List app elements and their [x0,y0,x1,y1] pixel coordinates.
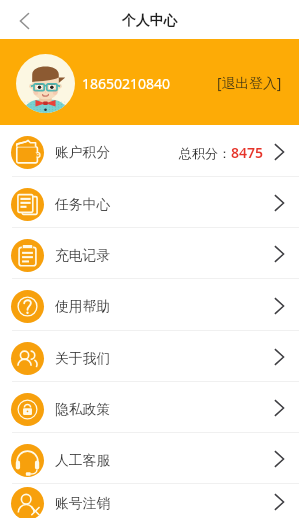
staticText: 隐私政策 [55,401,111,418]
button[interactable]: 使用帮助 [0,279,299,330]
staticText: 充电记录 [55,247,111,264]
staticText: [退出登入] [217,73,282,92]
staticText: 账号注销 [55,495,111,512]
staticText: 18650210840 [82,74,171,93]
staticText: 任务中心 [55,196,111,213]
staticText: 账户积分 [55,144,111,161]
button[interactable]: 充电记录 [0,228,299,278]
staticText: 8475 [231,143,264,162]
button[interactable]: 账号注销 [0,484,299,518]
button[interactable]: 隐私政策 [0,382,299,432]
button[interactable]: 关于我们 [0,331,299,381]
staticText: 关于我们 [55,350,111,367]
button[interactable]: 人工客服 [0,433,299,483]
button[interactable]: Back [0,0,44,39]
staticText: 人工客服 [55,452,111,469]
button[interactable]: 任务中心 [0,177,299,227]
button[interactable]: [退出登入] [215,69,284,96]
button[interactable]: 账户积分 [0,125,299,176]
staticText: 总积分： [179,145,231,161]
staticText: 使用帮助 [55,298,111,315]
staticText: 个人中心 [122,12,178,29]
